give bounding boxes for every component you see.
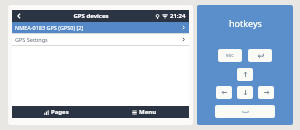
button[interactable]: Right xyxy=(258,86,274,99)
button[interactable]: NMEA-0183 GPS (GPS0) [2] xyxy=(12,22,189,33)
staticText: Menu xyxy=(139,108,157,116)
staticText: GPS Settings xyxy=(15,36,181,43)
staticText: NMEA-0183 GPS (GPS0) [2] xyxy=(15,24,181,31)
button[interactable]: Back xyxy=(12,10,26,22)
button[interactable]: Up xyxy=(237,68,253,81)
button[interactable]: Left xyxy=(216,86,232,99)
button[interactable]: Pages xyxy=(12,106,100,118)
button[interactable]: Space xyxy=(215,105,275,118)
button[interactable]: Menu xyxy=(100,106,189,118)
button[interactable]: GPS Settings xyxy=(12,34,189,45)
staticText: GPS devices xyxy=(73,12,109,20)
staticText: Pages xyxy=(51,108,69,116)
button[interactable]: Escape xyxy=(218,49,242,62)
staticText: esc xyxy=(226,52,234,59)
button[interactable]: Down xyxy=(237,86,253,99)
staticText: 21:24 xyxy=(170,12,186,20)
button[interactable]: Enter xyxy=(248,49,272,62)
staticText: hotkeys xyxy=(229,17,262,29)
